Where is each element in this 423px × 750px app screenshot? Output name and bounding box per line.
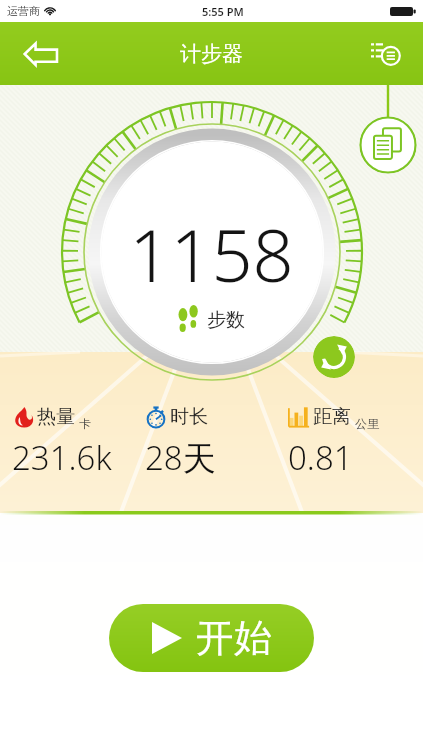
button[interactable]: 距离: [282, 405, 423, 480]
staticText: 231.6k: [12, 435, 112, 480]
staticText: 0.81: [288, 435, 353, 480]
staticText: 热量: [37, 405, 75, 429]
staticText: 运营商: [7, 4, 40, 18]
staticText: 距离: [313, 405, 351, 429]
staticText: 时长: [170, 405, 208, 429]
button[interactable]: 历史记录: [359, 116, 417, 174]
staticText: 公里: [355, 416, 379, 431]
staticText: 5:55 PM: [202, 4, 244, 19]
button[interactable]: 时长: [141, 405, 282, 480]
button[interactable]: 返回: [18, 31, 64, 77]
button[interactable]: 记录列表: [363, 31, 409, 77]
staticText: 1158: [129, 205, 294, 303]
button[interactable]: 热量: [0, 405, 141, 480]
staticText: 开始: [196, 614, 272, 662]
staticText: 步数: [207, 308, 245, 332]
staticText: 28天: [145, 435, 216, 480]
button[interactable]: 开始: [109, 604, 314, 672]
staticText: 计步器: [180, 41, 243, 67]
button[interactable]: 刷新: [313, 336, 355, 378]
staticText: 卡: [79, 416, 91, 431]
